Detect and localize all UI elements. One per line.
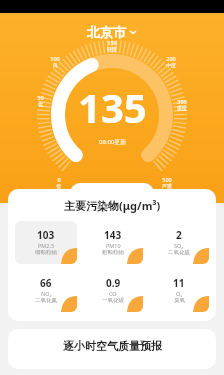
staticText: 0.9 [106, 276, 121, 290]
staticText: 200 [166, 55, 176, 62]
staticText: 中度 [166, 62, 176, 68]
staticText: 11 [173, 276, 185, 290]
staticText: 100 [50, 55, 60, 62]
staticText: 严重 [162, 183, 172, 189]
staticText: 143 [104, 228, 122, 242]
staticText: 50 [37, 94, 44, 101]
staticText: 二氧化氮 [35, 297, 57, 304]
staticText: 2 [176, 228, 182, 242]
staticText: 北京市 [87, 24, 126, 40]
staticText: 逐小时空气质量预报 [63, 339, 162, 353]
staticText: 150 [107, 39, 117, 46]
staticText: 二氧化硫 [168, 249, 190, 256]
button[interactable]: 103 [15, 221, 77, 264]
staticText: O₃ [176, 290, 183, 297]
staticText: 优 [38, 101, 43, 107]
staticText: NO₂ [41, 290, 52, 297]
staticText: 主要污染物(μg/m³) [64, 198, 161, 213]
staticText: 08:00更新 [99, 138, 127, 146]
button[interactable]: 轻度污染 [70, 183, 154, 203]
staticText: 300 [177, 98, 187, 105]
button[interactable]: 2 [148, 221, 209, 264]
staticText: PM2.5 [38, 242, 55, 249]
staticText: CO [109, 290, 117, 297]
button[interactable]: 143 [82, 221, 143, 264]
staticText: 66 [40, 276, 52, 290]
button[interactable]: 北京市 [81, 22, 143, 42]
staticText: 500 [162, 176, 172, 183]
staticText: 轻度 [107, 46, 117, 52]
button[interactable]: 11 [148, 269, 209, 312]
staticText: 103 [37, 228, 55, 242]
staticText: 优 [56, 183, 61, 189]
staticText: 重度 [177, 105, 187, 111]
staticText: 0 [57, 176, 61, 183]
staticText: 135 [78, 80, 147, 134]
staticText: PM10 [106, 242, 121, 249]
staticText: 细颗粒物 [35, 249, 57, 256]
staticText: 一氧化碳 [102, 297, 124, 304]
staticText: 臭氧 [174, 297, 185, 304]
staticText: SO₂ [174, 242, 184, 249]
staticText: 粗颗粒物 [102, 249, 124, 256]
button[interactable]: 66 [15, 269, 77, 312]
staticText: 良 [53, 62, 58, 68]
button[interactable]: 0.9 [82, 269, 143, 312]
